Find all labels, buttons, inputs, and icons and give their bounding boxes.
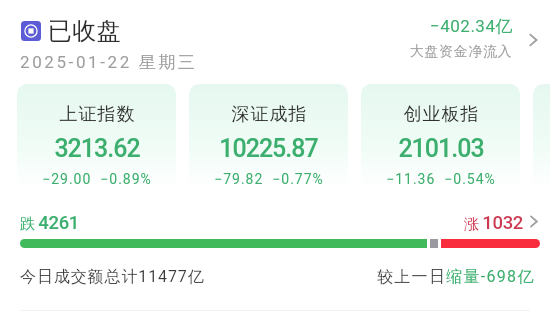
staticText: 涨1032 <box>464 212 524 234</box>
staticText: −402.34亿 <box>430 16 513 37</box>
button[interactable]: 深证成指 <box>189 84 348 204</box>
staticText: 2101.03 <box>398 134 484 163</box>
staticText: −29.00 −0.89% <box>42 171 152 187</box>
staticText: 2025-01-22 星期三 <box>20 52 198 73</box>
other: 查看大盘资金净流入 <box>525 32 541 48</box>
staticText: 已收盘 <box>48 16 121 46</box>
staticText: −11.36 −0.54% <box>386 171 496 187</box>
button[interactable]: 上证指数 <box>17 84 176 204</box>
staticText: 创业板指 <box>403 103 479 126</box>
staticText: 深证成指 <box>231 103 307 126</box>
other: 收盘状态 <box>21 21 41 41</box>
staticText: 上证指数 <box>59 103 135 126</box>
button[interactable]: 科创50 <box>533 84 550 204</box>
button[interactable]: 创业板指 <box>361 84 520 204</box>
staticText: −79.82 −0.77% <box>214 171 324 187</box>
staticText: 3213.62 <box>54 134 140 163</box>
staticText: 今日成交额总计11477亿 <box>20 267 205 287</box>
staticText: 较上一日缩量-698亿 <box>377 267 535 287</box>
staticText: 跌4261 <box>20 212 80 234</box>
staticText: 大盘资金净流入 <box>410 43 513 61</box>
button[interactable]: −402.34亿 <box>392 14 544 64</box>
button[interactable]: 跌4261 <box>12 210 546 236</box>
staticText: 10225.87 <box>219 134 318 163</box>
